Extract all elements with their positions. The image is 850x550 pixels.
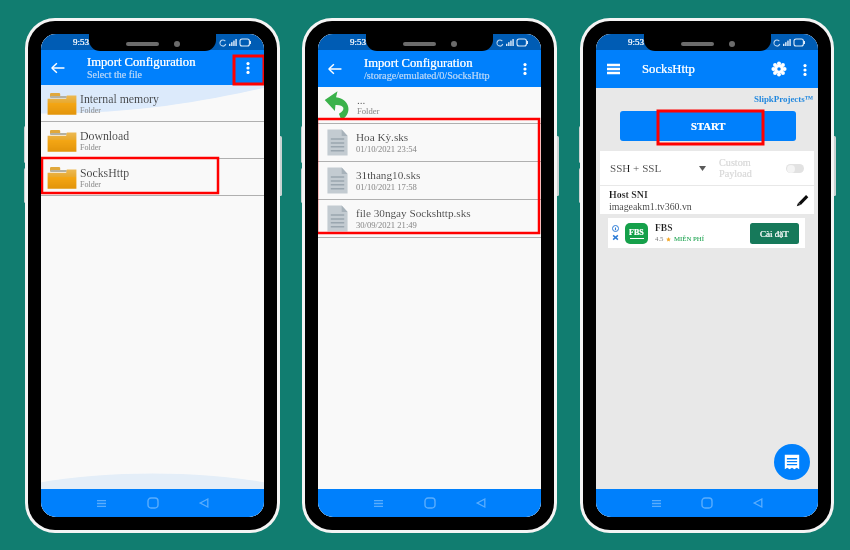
staticText: file 30ngay Sockshttp.sks xyxy=(356,207,471,219)
staticText: Select the file xyxy=(87,69,142,80)
staticText: Download xyxy=(80,129,130,142)
button[interactable]: ... xyxy=(318,87,541,123)
button[interactable]: Custom payload toggle xyxy=(786,164,804,173)
button[interactable]: Internal memory xyxy=(41,85,264,121)
staticText: 9:53 xyxy=(73,37,90,47)
staticText: FBS xyxy=(655,223,673,234)
button[interactable]: Recents xyxy=(367,492,389,514)
button[interactable]: Home xyxy=(142,492,164,514)
staticText: Internal memory xyxy=(80,92,159,105)
button[interactable]: Host SNI xyxy=(600,186,814,214)
button[interactable]: Home xyxy=(419,492,441,514)
staticText: SlipkProjects™ xyxy=(754,94,814,104)
button[interactable]: Menu xyxy=(603,59,623,79)
button[interactable]: START xyxy=(620,111,796,141)
staticText: Host SNI xyxy=(609,189,648,200)
button[interactable]: Recents xyxy=(645,492,667,514)
staticText: 01/10/2021 23:54 xyxy=(356,144,417,154)
button[interactable]: Back xyxy=(193,492,215,514)
staticText: Folder xyxy=(357,106,380,116)
button[interactable]: Log xyxy=(774,444,810,480)
button[interactable]: More options xyxy=(237,57,259,79)
staticText: imageakm1.tv360.vn xyxy=(609,201,692,212)
button[interactable]: SSH + SSL xyxy=(600,151,706,185)
button[interactable]: Edit host SNI xyxy=(796,194,809,207)
staticText: 9:53 xyxy=(350,37,367,47)
staticText: SSH + SSL xyxy=(610,162,662,174)
button[interactable]: More options xyxy=(514,58,536,80)
button[interactable]: Settings xyxy=(768,58,790,80)
staticText: START xyxy=(691,120,726,132)
staticText: 4.5 xyxy=(655,235,664,243)
staticText: Folder xyxy=(80,143,101,152)
button[interactable]: Back xyxy=(322,56,348,82)
staticText: SocksHttp xyxy=(642,62,695,76)
staticText: Import Configuration xyxy=(87,55,196,69)
staticText: FBS xyxy=(629,228,644,237)
staticText: MIỄN PHÍ xyxy=(674,235,705,243)
staticText: Cài đặT xyxy=(760,229,789,239)
button[interactable]: Back xyxy=(45,55,71,81)
staticText: Import Configuration xyxy=(364,56,473,70)
staticText: /storage/emulated/0/SocksHttp xyxy=(364,70,490,81)
staticText: Folder xyxy=(80,106,101,115)
staticText: SocksHttp xyxy=(80,166,130,179)
button[interactable]: Cài đặT xyxy=(750,223,799,244)
button[interactable]: More options xyxy=(795,60,814,79)
staticText: Custom xyxy=(719,157,751,168)
staticText: 30/09/2021 21:49 xyxy=(356,220,417,230)
staticText: 31thang10.sks xyxy=(356,169,421,181)
button[interactable]: 31thang10.sks xyxy=(318,162,541,199)
button[interactable]: Download xyxy=(41,122,264,158)
button[interactable]: Hoa Kỳ.sks xyxy=(318,124,541,161)
button[interactable]: Home xyxy=(696,492,718,514)
staticText: Hoa Kỳ.sks xyxy=(356,131,409,143)
button[interactable]: Recents xyxy=(90,492,112,514)
button[interactable]: file 30ngay Sockshttp.sks xyxy=(318,200,541,237)
button[interactable]: SocksHttp xyxy=(41,159,264,195)
staticText: Folder xyxy=(80,180,101,189)
staticText: 01/10/2021 17:58 xyxy=(356,182,417,192)
staticText: Payload xyxy=(719,168,752,179)
staticText: 9:53 xyxy=(628,37,645,47)
button[interactable]: Back xyxy=(747,492,769,514)
staticText: ... xyxy=(357,94,366,106)
button[interactable]: Back xyxy=(470,492,492,514)
